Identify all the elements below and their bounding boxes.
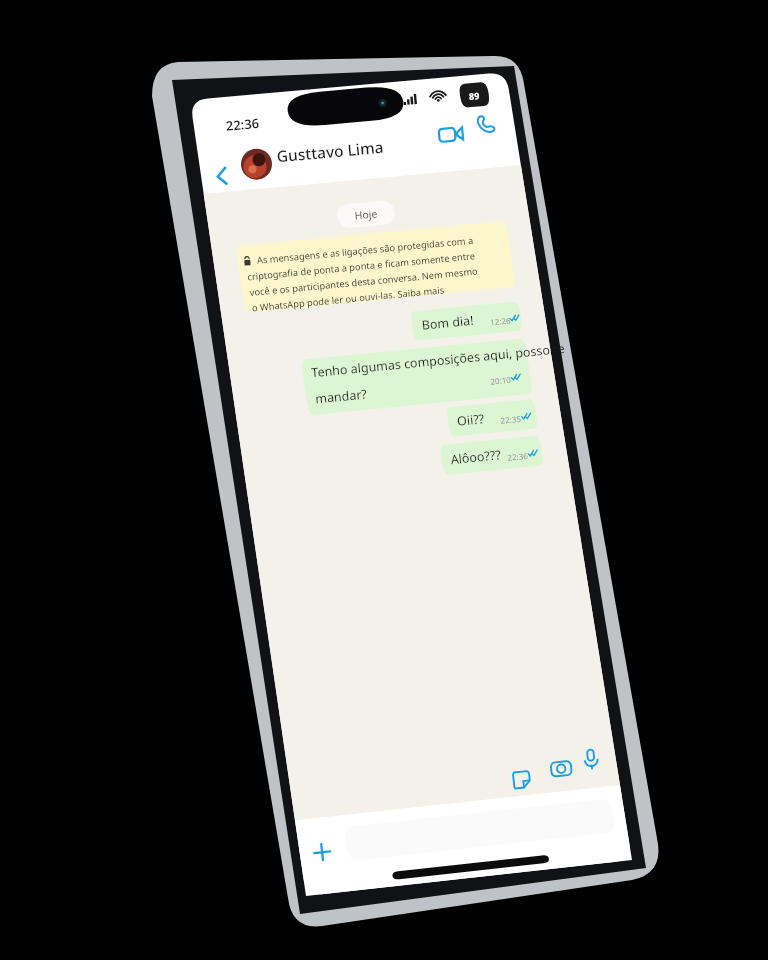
button[interactable]: WhatsApp chat with Gusttavo Lima bbox=[0, 0, 768, 960]
